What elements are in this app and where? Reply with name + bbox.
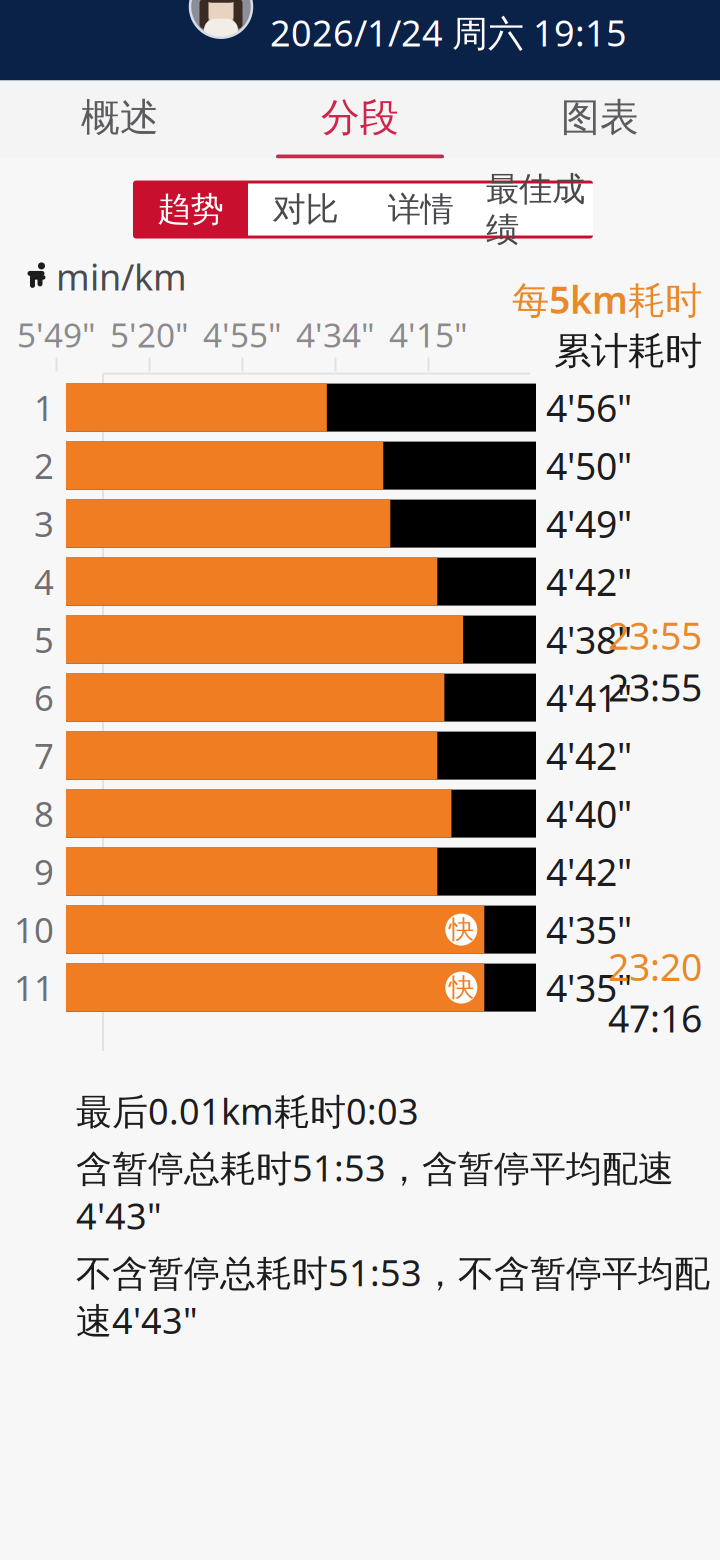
staticText: 累计耗时 (554, 328, 702, 374)
staticText: 7 (34, 733, 54, 779)
staticText: 4'55" (203, 312, 282, 357)
staticText: 4'42" (546, 557, 632, 606)
staticText: 23:20 (608, 942, 702, 991)
staticText: 23:55 (608, 611, 702, 660)
staticText: 5'49" (17, 312, 96, 357)
staticText: 4'40" (546, 789, 632, 838)
staticText: 4'38" (546, 615, 632, 664)
staticText: 10 (14, 907, 54, 953)
staticText: 2 (34, 443, 54, 489)
button[interactable]: 概述 (0, 80, 240, 158)
staticText: 1 (34, 385, 54, 431)
button[interactable]: 趋势 (133, 183, 248, 235)
staticText: 4'15" (389, 312, 468, 357)
staticText: 4'56" (546, 383, 632, 432)
staticText: 23:55 (608, 662, 702, 712)
staticText: 最后0.01km耗时0:03 (76, 1087, 419, 1135)
staticText: 4'34" (296, 312, 375, 357)
staticText: 4'42" (546, 731, 632, 780)
staticText: 快 (449, 972, 474, 1003)
staticText: 4 (34, 559, 54, 605)
button[interactable]: 对比 (248, 183, 363, 235)
staticText: 6 (34, 675, 54, 721)
staticText: 趋势 (157, 189, 223, 230)
staticText: 最佳成绩 (486, 169, 585, 250)
staticText: 5 (34, 617, 54, 663)
staticText: 快 (449, 914, 474, 945)
button[interactable]: 分段 (240, 80, 480, 158)
staticText: 每5km耗时 (512, 274, 702, 324)
staticText: min/km (56, 252, 187, 300)
staticText: 概述 (81, 94, 159, 141)
staticText: 4'41" (546, 673, 632, 722)
staticText: 4'42" (546, 847, 632, 896)
staticText: 8 (34, 791, 54, 837)
staticText: 4'49" (546, 499, 632, 548)
button[interactable]: 详情 (363, 183, 478, 235)
staticText: 分段 (321, 94, 399, 141)
staticText: 详情 (387, 189, 453, 230)
staticText: 5'20" (110, 312, 189, 357)
staticText: 含暂停总耗时51:53，含暂停平均配速4'43" (76, 1144, 674, 1239)
staticText: 2026/1/24 周六 19:15 (270, 9, 627, 56)
staticText: 图表 (561, 94, 639, 141)
staticText: 4'35" (546, 905, 632, 954)
staticText: 不含暂停总耗时51:53，不含暂停平均配速4'43" (76, 1248, 710, 1344)
staticText: 4'50" (546, 441, 632, 490)
staticText: 11 (14, 965, 54, 1011)
staticText: 4'35" (546, 963, 632, 1012)
staticText: 47:16 (608, 993, 702, 1043)
staticText: 9 (34, 849, 54, 895)
staticText: 对比 (272, 189, 338, 230)
button[interactable]: 最佳成绩 (478, 183, 593, 235)
button[interactable]: 图表 (480, 80, 720, 158)
staticText: 3 (34, 501, 54, 547)
